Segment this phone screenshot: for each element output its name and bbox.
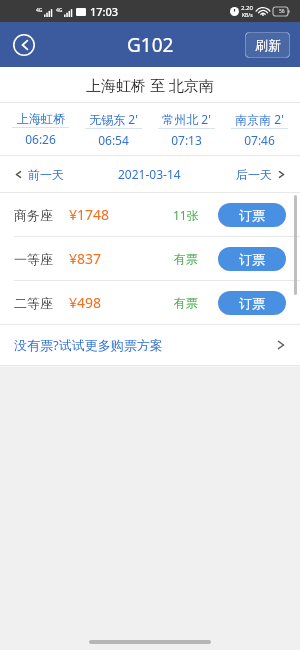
button[interactable]: 没有票?试试更多购票方案 [0, 325, 300, 365]
staticText: 11张 [173, 207, 199, 223]
button[interactable]: 后一天 [233, 163, 290, 186]
button[interactable]: 一等座 [0, 237, 300, 280]
button[interactable]: 订票 [218, 247, 286, 271]
button[interactable]: 南京南 2' [223, 111, 296, 148]
staticText: 4G [56, 7, 63, 14]
staticText: 没有票?试试更多购票方案 [14, 336, 163, 354]
staticText: 订票 [239, 207, 265, 223]
button[interactable]: 刷新 [245, 32, 290, 58]
staticText: ¥1748 [69, 205, 110, 224]
staticText: 上海虹桥 至 北京南 [86, 75, 214, 95]
staticText: 南京南 2' [235, 111, 284, 127]
button[interactable]: 订票 [218, 203, 286, 227]
staticText: 常州北 2' [162, 111, 211, 127]
button[interactable]: 前一天 [10, 163, 67, 186]
staticText: 56 [279, 8, 285, 15]
button[interactable]: 商务座 [0, 193, 300, 236]
button[interactable]: 订票 [218, 291, 286, 315]
staticText: 有票 [174, 295, 198, 310]
staticText: 无锡东 2' [89, 111, 138, 127]
staticText: 商务座 [14, 207, 53, 223]
staticText: 上海虹桥 [17, 111, 65, 126]
staticText: 订票 [239, 295, 265, 311]
staticText: 刷新 [255, 37, 281, 53]
staticText: KB/s [242, 12, 253, 19]
staticText: 4G [36, 7, 43, 14]
staticText: 有票 [174, 251, 198, 266]
button[interactable]: Back [8, 29, 40, 61]
button[interactable]: 上海虹桥 [4, 111, 77, 147]
staticText: 一等座 [14, 251, 53, 267]
staticText: G102 [127, 32, 174, 58]
button[interactable]: 二等座 [0, 281, 300, 324]
staticText: ¥498 [69, 293, 102, 312]
staticText: 07:46 [244, 132, 275, 148]
staticText: 06:26 [25, 131, 56, 147]
button[interactable]: 上海虹桥 至 北京南 [0, 67, 300, 102]
staticText: 订票 [239, 251, 265, 267]
button[interactable]: 无锡东 2' [77, 111, 150, 148]
staticText: ¥837 [69, 249, 102, 268]
staticText: 2021-03-14 [118, 166, 181, 182]
staticText: 07:13 [171, 132, 202, 148]
button[interactable]: 常州北 2' [150, 111, 223, 148]
staticText: 06:54 [98, 132, 129, 148]
staticText: 前一天 [28, 167, 64, 182]
staticText: 二等座 [14, 295, 53, 311]
staticText: 17:03 [90, 4, 119, 19]
staticText: 后一天 [236, 167, 272, 182]
staticText: 2.20 [241, 4, 253, 12]
